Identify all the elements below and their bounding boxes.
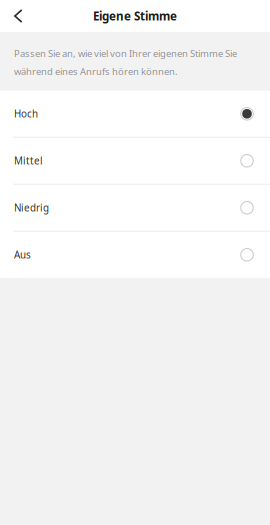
- button[interactable]: Mittel: [0, 138, 270, 184]
- staticText: Aus: [14, 248, 31, 261]
- staticText: Hoch: [14, 107, 38, 120]
- button[interactable]: Hoch: [0, 91, 270, 137]
- button[interactable]: Aus: [0, 232, 270, 278]
- button[interactable]: Back: [0, 0, 35, 32]
- staticText: Eigene Stimme: [93, 8, 177, 24]
- staticText: Passen Sie an, wie viel von Ihrer eigene…: [14, 47, 237, 78]
- button[interactable]: Niedrig: [0, 185, 270, 231]
- staticText: Niedrig: [14, 201, 49, 214]
- staticText: Mittel: [14, 154, 43, 167]
